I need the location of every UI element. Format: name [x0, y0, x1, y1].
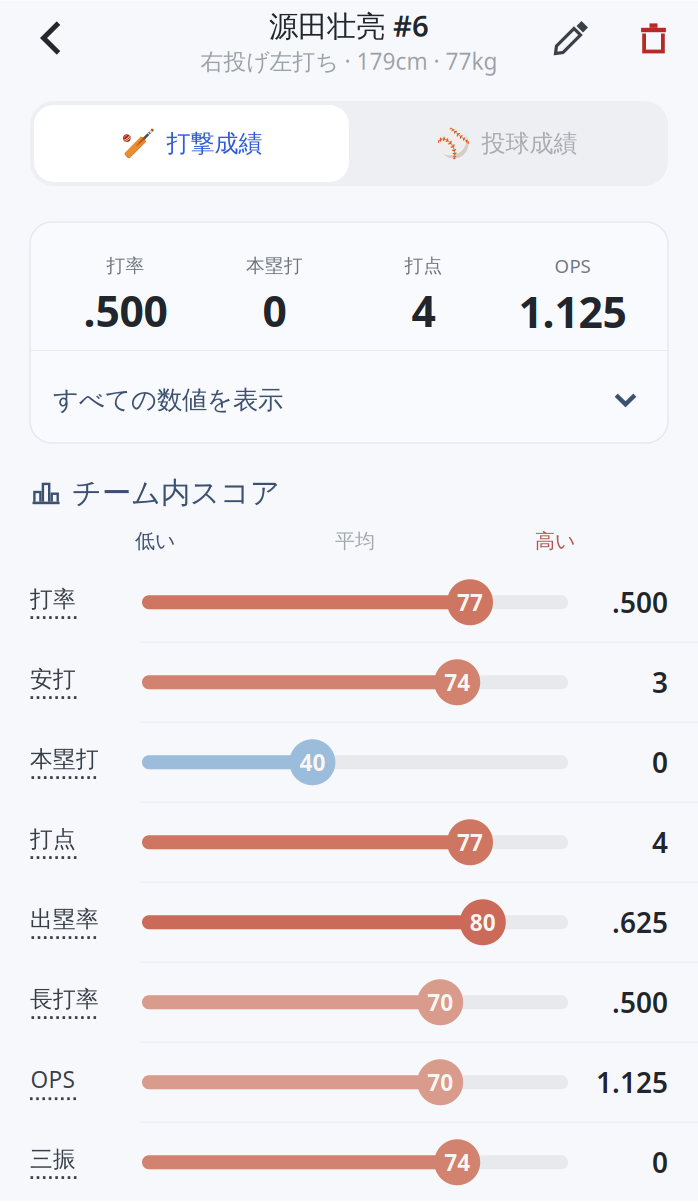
staticText: 74	[444, 1147, 470, 1177]
button[interactable]: Back	[0, 0, 102, 76]
staticText: 74	[444, 667, 470, 697]
staticText: .500	[612, 584, 668, 621]
button[interactable]: ⚾	[349, 105, 664, 182]
staticText: 安打	[30, 665, 76, 693]
staticText: 本塁打	[30, 745, 99, 773]
staticText: 出塁率	[30, 905, 99, 933]
staticText: 4	[652, 824, 668, 861]
staticText: 4	[411, 282, 435, 339]
staticText: 打点	[30, 825, 76, 853]
staticText: .625	[612, 904, 668, 941]
staticText: .500	[83, 282, 167, 339]
staticText: すべての数値を表示	[53, 384, 283, 415]
staticText: 0	[262, 282, 286, 339]
staticText: 70	[427, 987, 453, 1017]
staticText: 0	[652, 744, 668, 781]
staticText: OPS	[554, 253, 590, 278]
staticText: 77	[457, 587, 483, 617]
staticText: 平均	[335, 529, 375, 553]
staticText: 本塁打	[246, 254, 303, 277]
staticText: 打撃成績	[166, 129, 262, 158]
staticText: 1.125	[596, 1064, 668, 1101]
staticText: 0	[652, 1144, 668, 1181]
staticText: チーム内スコア	[72, 475, 280, 511]
staticText: OPS	[30, 1064, 74, 1094]
staticText: 40	[299, 747, 325, 777]
staticText: 1.125	[518, 283, 626, 340]
staticText: ⚾	[435, 127, 470, 159]
button[interactable]: すべての数値を表示	[30, 351, 668, 443]
button[interactable]: Delete	[625, 0, 682, 76]
staticText: 右投げ左打ち · 179cm · 77kg	[200, 46, 497, 76]
staticText: 77	[457, 827, 483, 857]
staticText: .500	[612, 984, 668, 1021]
staticText: 長打率	[30, 985, 99, 1013]
staticText: 打点	[404, 254, 442, 277]
button[interactable]: 🏏	[34, 105, 349, 182]
staticText: 打率	[106, 254, 144, 277]
staticText: 高い	[535, 529, 575, 553]
staticText: 投球成績	[481, 129, 577, 158]
button[interactable]: Edit	[519, 0, 625, 76]
staticText: 源田壮亮 #6	[269, 6, 429, 45]
staticText: 🏏	[120, 127, 155, 159]
staticText: 三振	[30, 1145, 76, 1173]
staticText: 打率	[30, 585, 76, 613]
staticText: 80	[470, 907, 496, 937]
staticText: 低い	[135, 529, 175, 553]
staticText: 3	[652, 664, 668, 701]
staticText: 70	[427, 1067, 453, 1097]
